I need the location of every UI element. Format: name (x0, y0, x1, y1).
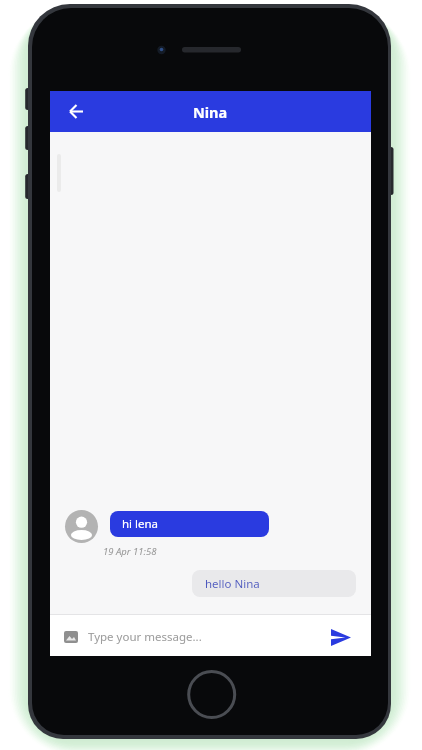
staticText: Nina (193, 102, 228, 122)
button[interactable]: hello Nina (192, 570, 356, 597)
button[interactable] (331, 629, 351, 646)
staticText: 19 Apr 11:58 (103, 545, 157, 558)
button[interactable] (69, 104, 84, 119)
staticText: Type your message... (88, 629, 202, 645)
staticText: hi lena (122, 516, 159, 532)
button[interactable]: Nina (50, 91, 371, 132)
button[interactable]: Type your message... (50, 618, 371, 656)
button[interactable] (64, 631, 78, 643)
button[interactable]: hi lena (110, 511, 269, 537)
staticText: hello Nina (205, 576, 260, 592)
